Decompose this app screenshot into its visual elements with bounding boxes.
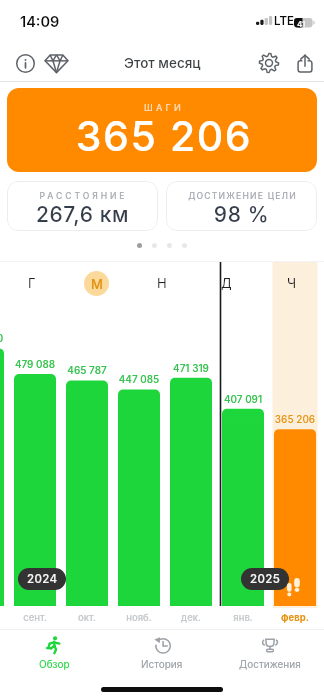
staticText: 2025	[250, 572, 281, 586]
button[interactable]: РАССТОЯНИЕ	[7, 181, 158, 231]
button[interactable]: История	[108, 633, 216, 679]
staticText: Ч	[287, 275, 297, 291]
staticText: дек.	[170, 612, 212, 623]
button[interactable]: 2025	[241, 568, 289, 590]
staticText: Д	[221, 275, 232, 291]
staticText: янв.	[222, 612, 264, 623]
button[interactable]: Share	[287, 44, 323, 82]
staticText: ДОСТИЖЕНИЕ ЦЕЛИ	[167, 191, 317, 201]
button[interactable]: Достижения	[216, 633, 324, 679]
staticText: 365 206	[274, 413, 316, 425]
staticText: 41	[297, 19, 306, 29]
button[interactable]: Premium	[39, 44, 74, 82]
staticText: 407 091	[222, 393, 264, 405]
staticText: 2024	[27, 572, 58, 586]
staticText: 267,6 км	[7, 202, 158, 227]
button[interactable]: Info	[8, 44, 43, 82]
button[interactable]: ДОСТИЖЕНИЕ ЦЕЛИ	[166, 181, 317, 231]
staticText: LTE	[274, 14, 294, 28]
button[interactable]: Обзор	[0, 633, 108, 679]
staticText: Г	[28, 275, 36, 291]
staticText: 465 787	[66, 364, 108, 376]
staticText: 471 319	[170, 362, 212, 374]
staticText: Достижения	[239, 658, 301, 670]
staticText: 365 206	[9, 111, 317, 161]
staticText: 14:09	[20, 13, 60, 31]
staticText: История	[141, 658, 183, 670]
staticText: Этот месяц	[124, 55, 201, 71]
button[interactable]: Н	[129, 264, 194, 302]
button[interactable]: 2024	[18, 568, 66, 590]
staticText: ШАГИ	[9, 102, 317, 113]
staticText: окт.	[66, 612, 108, 623]
staticText: 532 000	[0, 332, 4, 344]
staticText: сент.	[14, 612, 56, 623]
staticText: нояб.	[118, 612, 160, 623]
staticText: 447 085	[118, 373, 160, 385]
button[interactable]: М	[64, 264, 129, 302]
button[interactable]: Ч	[259, 264, 324, 302]
staticText: 479 088	[14, 358, 56, 370]
staticText: М	[91, 276, 103, 292]
button[interactable]: ШАГИ	[7, 88, 317, 172]
button[interactable]: Settings	[251, 44, 287, 82]
button[interactable]: Д	[194, 264, 259, 302]
staticText: РАССТОЯНИЕ	[8, 191, 158, 201]
staticText: Обзор	[39, 658, 70, 670]
staticText: Н	[157, 275, 167, 291]
staticText: февр.	[274, 612, 316, 623]
button[interactable]: Г	[0, 264, 64, 302]
staticText: 98 %	[166, 202, 317, 227]
